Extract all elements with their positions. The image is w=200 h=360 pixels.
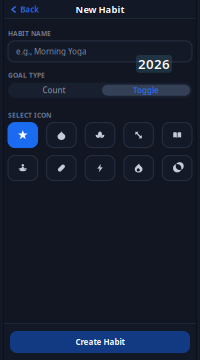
button[interactable]: Water (47, 123, 76, 148)
staticText: Toggle (133, 85, 159, 95)
staticText: e.g., Morning Yoga (16, 46, 86, 57)
staticText: Count (42, 85, 65, 95)
staticText: New Habit (75, 3, 124, 16)
staticText: Back (20, 4, 39, 15)
staticText: GOAL TYPE (8, 71, 45, 80)
button[interactable]: Energy (85, 156, 115, 181)
staticText: HABIT NAME (8, 29, 51, 38)
button[interactable]: Stretch (124, 123, 153, 148)
button[interactable]: Medicine (47, 156, 76, 181)
button[interactable]: Sleep (162, 156, 192, 181)
button[interactable]: Create Habit (10, 331, 190, 353)
staticText: Create Habit (75, 337, 124, 347)
staticText: 2026 (138, 55, 170, 73)
button[interactable]: Workout (8, 156, 38, 181)
button[interactable]: Read (162, 123, 192, 148)
button[interactable]: Back (0, 0, 45, 19)
button[interactable]: Streak (124, 156, 153, 181)
button[interactable]: Toggle (100, 83, 192, 98)
staticText: SELECT ICON (8, 111, 51, 120)
button[interactable]: Plant (85, 123, 115, 148)
button[interactable]: Count (8, 83, 100, 98)
button[interactable]: Star (8, 123, 38, 148)
